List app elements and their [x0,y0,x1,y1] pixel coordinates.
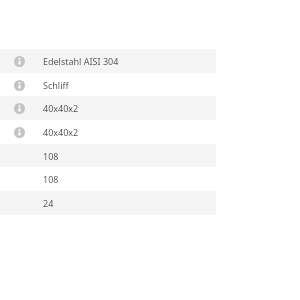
other: More information [14,127,25,138]
button[interactable]: More information [0,96,216,120]
other: More information [14,56,25,67]
other: More information [14,80,25,91]
staticText: 24 [43,197,54,209]
staticText: Schliff [43,79,69,91]
staticText: 108 [43,150,59,162]
staticText: 40x40x2 [43,126,79,138]
staticText: Edelstahl AISI 304 [43,55,119,67]
button[interactable]: More information [0,73,216,97]
button[interactable]: 24 [0,191,216,215]
other: More information [14,103,25,114]
button[interactable]: 108 [0,144,216,168]
button[interactable]: More information [0,120,216,144]
button[interactable]: 108 [0,167,216,191]
staticText: 108 [43,173,59,185]
staticText: 40x40x2 [43,102,79,114]
button[interactable]: More information [0,49,216,73]
